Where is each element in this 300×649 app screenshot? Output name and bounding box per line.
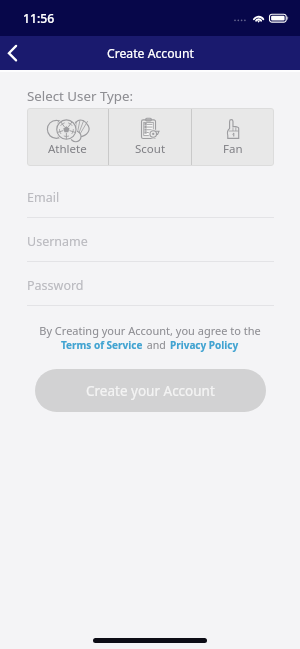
button[interactable]: Create your Account xyxy=(35,369,266,412)
staticText: Athlete xyxy=(48,141,87,157)
staticText: By Creating your Account, you agree to t… xyxy=(0,323,300,338)
staticText: Email xyxy=(27,189,60,206)
button[interactable]: Athlete xyxy=(27,108,108,166)
button[interactable]: Email xyxy=(27,184,274,210)
button[interactable]: Terms of Service xyxy=(61,338,143,352)
staticText: Username xyxy=(27,233,88,250)
staticText: Fan xyxy=(223,141,243,157)
staticText: Create your Account xyxy=(86,382,215,400)
staticText: Password xyxy=(27,277,84,294)
button[interactable]: Fan xyxy=(192,108,274,166)
staticText: and xyxy=(144,338,169,352)
button[interactable]: Scout xyxy=(109,108,191,166)
button[interactable]: Username xyxy=(27,228,274,254)
staticText: Terms of Service xyxy=(61,338,143,352)
button[interactable]: Password xyxy=(27,272,274,298)
staticText: 11:56 xyxy=(23,10,55,27)
button[interactable]: Back xyxy=(0,36,34,70)
staticText: Scout xyxy=(135,141,166,157)
staticText: Privacy Policy xyxy=(170,338,239,352)
staticText: Select User Type: xyxy=(27,87,134,105)
button[interactable]: Privacy Policy xyxy=(170,338,239,352)
staticText: Create Account xyxy=(107,45,194,62)
